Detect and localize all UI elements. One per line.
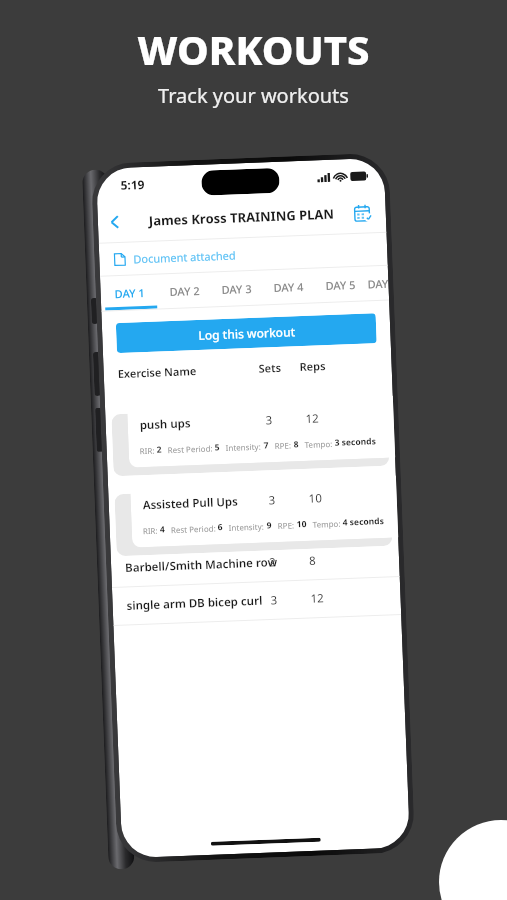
button[interactable]: single arm DB bicep curl [112, 576, 401, 625]
staticText: DAY 5 [325, 277, 356, 293]
staticText: 4 seconds [342, 515, 385, 529]
staticText: push ups [139, 415, 191, 433]
button[interactable]: DAY 4 [262, 268, 315, 304]
staticText: 4 [159, 523, 165, 536]
staticText: 3 [268, 492, 276, 508]
staticText: 9 [266, 519, 272, 531]
staticText: Exercise Name [117, 363, 197, 381]
staticText: Rest Period: [167, 442, 213, 455]
button[interactable]: Assisted Pull Ups [130, 475, 398, 548]
staticText: 5 [214, 441, 220, 453]
staticText: Tempo: [312, 518, 341, 530]
staticText: Barbell/Smith Machine row [125, 554, 277, 576]
staticText: 8 [309, 553, 316, 569]
staticText: RIR: [143, 525, 158, 536]
button[interactable]: Log this workout [116, 313, 377, 353]
button[interactable]: DAY 1 [100, 274, 159, 311]
staticText: DAY [367, 276, 389, 291]
staticText: Reps [299, 358, 326, 374]
staticText: Tempo: [304, 438, 333, 450]
staticText: 7 [263, 439, 269, 452]
button[interactable]: Document attached [99, 233, 388, 276]
staticText: Rest Period: [171, 522, 216, 535]
staticText: 3 [270, 592, 278, 608]
staticText: 2 [156, 443, 162, 456]
button[interactable]: Back [97, 204, 133, 240]
button[interactable]: DAY 5 [314, 266, 367, 302]
staticText: Sets [258, 360, 282, 376]
button[interactable]: DAY 2 [158, 272, 211, 308]
staticText: 3 [265, 412, 273, 428]
staticText: RPE: [274, 439, 292, 451]
staticText: DAY 4 [273, 279, 304, 295]
staticText: Document attached [133, 247, 237, 266]
button[interactable]: push ups [127, 396, 395, 468]
staticText: Intensity: [225, 441, 262, 453]
staticText: 12 [310, 590, 325, 607]
button[interactable]: Calendar [347, 197, 378, 228]
staticText: RPE: [277, 519, 295, 531]
staticText: Assisted Pull Ups [142, 494, 238, 513]
staticText: DAY 3 [221, 281, 252, 297]
staticText: Track your workouts [158, 82, 349, 109]
button[interactable]: Barbell/Smith Machine row [110, 538, 400, 587]
staticText: WORKOUTS [137, 22, 370, 76]
staticText: RIR: [139, 445, 155, 456]
staticText: James Kross TRAINING PLAN [149, 205, 335, 230]
staticText: 2 [269, 554, 276, 570]
staticText: DAY 1 [114, 285, 145, 301]
staticText: Intensity: [228, 521, 265, 533]
staticText: 5:19 [120, 176, 145, 193]
staticText: single arm DB bicep curl [126, 593, 263, 614]
staticText: 12 [305, 410, 320, 427]
staticText: 3 seconds [334, 435, 377, 449]
button[interactable]: DAY [366, 266, 389, 300]
staticText: 10 [308, 490, 323, 507]
staticText: Log this workout [198, 323, 295, 343]
staticText: 6 [217, 521, 223, 533]
staticText: 8 [293, 438, 299, 450]
staticText: 10 [296, 518, 307, 530]
staticText: DAY 2 [169, 283, 200, 299]
button[interactable]: DAY 3 [210, 270, 263, 306]
